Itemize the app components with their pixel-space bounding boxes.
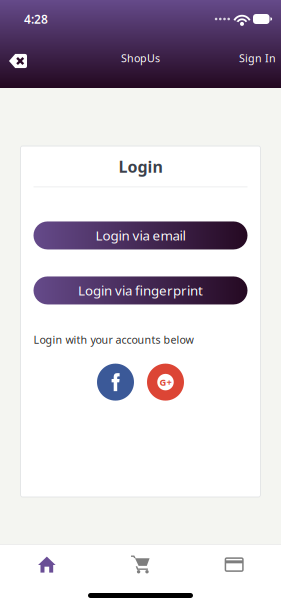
button[interactable]: Login via fingerprint: [33, 276, 247, 304]
staticText: 4:28: [24, 11, 48, 27]
staticText: Login via email: [95, 227, 185, 244]
staticText: G+: [159, 376, 171, 388]
staticText: Login: [118, 156, 162, 177]
button[interactable]: Sign in with Google: [147, 364, 184, 401]
staticText: Login via fingerprint: [78, 282, 203, 299]
button[interactable]: Sign In: [230, 41, 281, 75]
button[interactable]: Cart: [94, 552, 187, 578]
button[interactable]: Home: [0, 552, 94, 578]
button[interactable]: Login via email: [33, 221, 247, 249]
staticText: Sign In: [239, 51, 276, 65]
button[interactable]: Close: [0, 39, 39, 77]
staticText: ShopUs: [121, 51, 160, 65]
staticText: Login with your accounts below: [33, 332, 193, 347]
button[interactable]: Payments: [187, 552, 281, 578]
button[interactable]: Sign in with Facebook: [97, 364, 134, 401]
